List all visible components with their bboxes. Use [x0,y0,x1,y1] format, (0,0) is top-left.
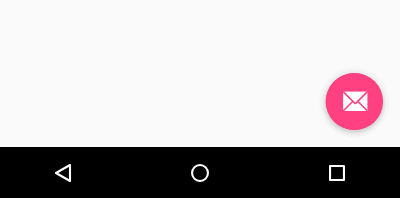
button[interactable]: Home [176,149,224,197]
button[interactable]: Recent apps [313,149,361,197]
button[interactable]: Compose message [326,73,383,130]
button[interactable]: Back [39,149,87,197]
